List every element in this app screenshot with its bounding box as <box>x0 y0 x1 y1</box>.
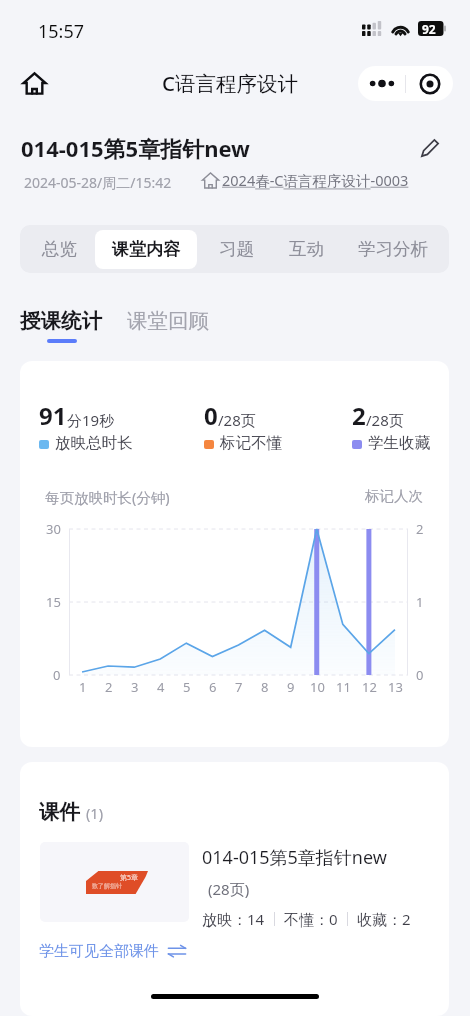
staticText: (28页) <box>208 879 250 899</box>
button[interactable]: 课堂回顾 <box>127 305 211 337</box>
button[interactable]: Home <box>12 61 56 105</box>
staticText: 放映：14 <box>202 909 265 929</box>
staticText: 数了解指针 <box>92 882 122 890</box>
staticText: 11 <box>336 678 351 696</box>
staticText: 15 <box>46 593 61 611</box>
button[interactable]: Close <box>406 66 453 101</box>
staticText: /28页 <box>366 410 404 430</box>
staticText: 30 <box>46 520 61 538</box>
staticText: 5 <box>183 678 191 696</box>
staticText: 8 <box>261 678 269 696</box>
staticText: 0 <box>416 666 424 684</box>
staticText: 收藏：2 <box>357 909 411 929</box>
staticText: 课堂回顾 <box>127 308 209 334</box>
staticText: (1) <box>86 803 103 823</box>
staticText: 7 <box>235 678 243 696</box>
staticText: 014-015第5章指针new <box>202 845 387 870</box>
staticText: 不懂：0 <box>284 909 338 929</box>
staticText: 3 <box>131 678 139 696</box>
staticText: 标记人次 <box>365 487 423 505</box>
staticText: 13 <box>388 678 403 696</box>
staticText: 课堂内容 <box>112 239 180 260</box>
staticText: 学习分析 <box>358 238 428 260</box>
staticText: 2024-05-28/周二/15:42 <box>24 173 172 192</box>
staticText: 每页放映时长(分钟) <box>45 487 170 507</box>
staticText: 总览 <box>42 238 77 260</box>
staticText: 第5章 <box>120 873 139 883</box>
button[interactable]: 014-015第5章指针new <box>202 845 447 929</box>
button[interactable]: Courseware thumbnail <box>40 842 189 922</box>
staticText: 2 <box>105 678 113 696</box>
staticText: 课件 <box>39 799 80 825</box>
staticText: 2024春-C语言程序设计-0003 <box>222 170 409 190</box>
button[interactable]: 学生可见全部课件 <box>39 940 186 962</box>
staticText: 9 <box>287 678 295 696</box>
staticText: 1 <box>79 678 87 696</box>
staticText: 互动 <box>289 238 324 260</box>
staticText: 4 <box>157 678 165 696</box>
button[interactable]: More options <box>358 66 405 101</box>
staticText: 014-015第5章指针new <box>21 133 250 163</box>
button[interactable]: 授课统计 <box>20 305 103 347</box>
staticText: 1 <box>416 593 424 611</box>
staticText: 6 <box>209 678 217 696</box>
staticText: 0 <box>53 666 61 684</box>
button[interactable]: 互动 <box>270 228 342 270</box>
staticText: /28页 <box>218 410 256 430</box>
staticText: 学生可见全部课件 <box>39 942 159 961</box>
button[interactable]: 习题 <box>200 228 272 270</box>
staticText: 12 <box>362 678 377 696</box>
staticText: 15:57 <box>38 19 85 44</box>
staticText: 2 <box>416 520 424 538</box>
staticText: C语言程序设计 <box>162 69 299 97</box>
staticText: 学生收藏 <box>368 433 430 453</box>
staticText: 放映总时长 <box>55 433 133 453</box>
button[interactable]: 总览 <box>24 228 94 270</box>
button[interactable]: 学习分析 <box>356 228 430 270</box>
staticText: 92 <box>422 21 436 36</box>
staticText: 2 <box>352 399 366 432</box>
staticText: 0 <box>204 399 218 432</box>
button[interactable]: 课堂内容 <box>95 230 197 269</box>
staticText: 习题 <box>219 238 254 260</box>
staticText: 标记不懂 <box>220 433 282 453</box>
staticText: 分19秒 <box>67 410 115 430</box>
staticText: 91 <box>39 399 67 432</box>
button[interactable]: 2024春-C语言程序设计-0003 <box>202 170 409 190</box>
staticText: 10 <box>310 678 325 696</box>
staticText: 授课统计 <box>20 308 102 334</box>
button[interactable]: Edit <box>410 128 450 168</box>
